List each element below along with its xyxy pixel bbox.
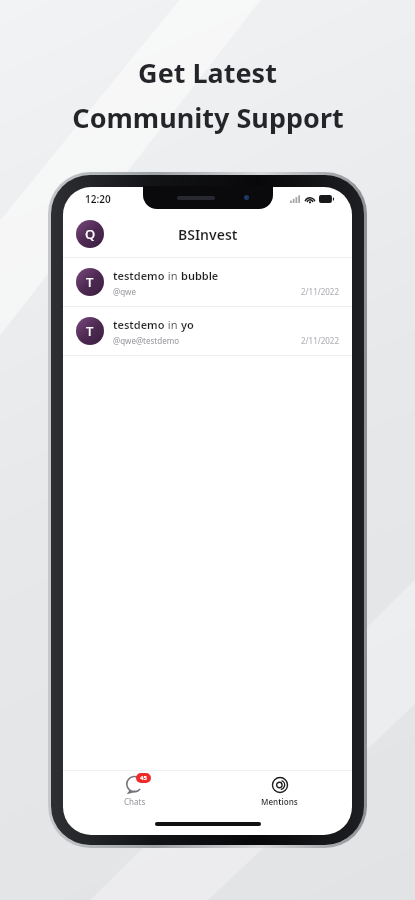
button[interactable]: Profile (76, 220, 104, 248)
button[interactable]: 45 (63, 771, 207, 813)
staticText: BSInvest (178, 225, 238, 244)
staticText: bubble (181, 268, 219, 283)
staticText: 12:20 (85, 192, 111, 206)
staticText: Chats (124, 796, 146, 807)
staticText: yo (181, 317, 194, 332)
staticText: Community Support (72, 99, 344, 136)
staticText: Q (85, 225, 96, 243)
staticText: T (86, 273, 94, 291)
button[interactable]: T (63, 307, 352, 355)
staticText: @qwe (113, 286, 136, 297)
staticText: 2/11/2022 (301, 335, 339, 346)
staticText: Mentions (261, 796, 298, 807)
staticText: testdemo (113, 268, 165, 283)
button[interactable]: Mentions (207, 771, 352, 813)
staticText: Get Latest (138, 54, 277, 91)
staticText: in (165, 317, 181, 332)
button[interactable]: T (63, 258, 352, 306)
staticText: 2/11/2022 (301, 286, 339, 297)
staticText: @qwe@testdemo (113, 335, 179, 346)
staticText: testdemo (113, 317, 165, 332)
staticText: 45 (140, 774, 147, 782)
staticText: T (86, 322, 94, 340)
staticText: in (165, 268, 181, 283)
